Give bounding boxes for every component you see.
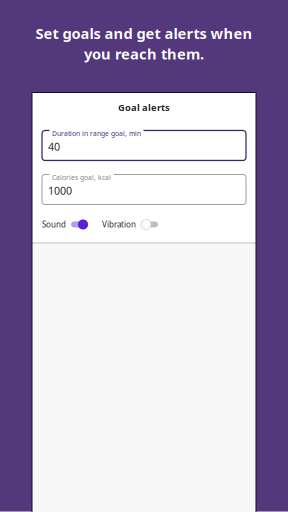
staticText: Duration in range goal, min (52, 129, 141, 138)
button[interactable]: 1000 (42, 174, 246, 204)
staticText: Goal alerts (118, 101, 170, 114)
staticText: Vibration (102, 219, 136, 230)
button[interactable]: Vibration (102, 219, 158, 230)
staticText: 40 (48, 139, 60, 154)
staticText: you reach them. (84, 44, 204, 63)
button[interactable]: Sound (42, 219, 88, 230)
staticText: Sound (42, 219, 66, 230)
staticText: Calories goal, kcal (52, 173, 111, 182)
staticText: Set goals and get alerts when (35, 23, 252, 43)
button[interactable]: 40 (42, 130, 246, 160)
staticText: 1000 (48, 183, 72, 198)
